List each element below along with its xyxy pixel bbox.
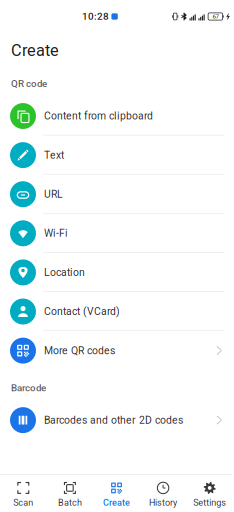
staticText: Location xyxy=(44,266,85,278)
button[interactable]: URL xyxy=(0,175,233,214)
staticText: Scan xyxy=(13,497,33,508)
button[interactable]: Scan xyxy=(0,473,47,512)
button[interactable]: More QR codes xyxy=(0,331,233,370)
staticText: Batch xyxy=(58,497,82,508)
button[interactable]: Create xyxy=(93,473,140,512)
button[interactable]: Barcodes and other 2D codes xyxy=(0,401,233,440)
staticText: Text xyxy=(44,149,64,161)
button[interactable]: History xyxy=(140,473,186,512)
staticText: Content from clipboard xyxy=(44,110,153,122)
staticText: Contact (VCard) xyxy=(44,305,120,318)
staticText: QR code xyxy=(11,78,47,89)
button[interactable]: Batch xyxy=(47,473,93,512)
button[interactable]: Wi-Fi xyxy=(0,214,233,253)
button[interactable]: Content from clipboard xyxy=(0,96,233,136)
staticText: More QR codes xyxy=(44,344,115,357)
staticText: 10:28 xyxy=(82,11,109,22)
staticText: Barcodes and other 2D codes xyxy=(44,414,183,426)
staticText: Barcode xyxy=(11,382,46,394)
staticText: Wi-Fi xyxy=(44,227,68,239)
staticText: URL xyxy=(44,188,63,200)
staticText: 67 xyxy=(212,13,218,20)
staticText: Create xyxy=(11,41,59,60)
staticText: History xyxy=(149,497,177,508)
button[interactable]: Contact (VCard) xyxy=(0,292,233,331)
button[interactable]: Settings xyxy=(186,473,233,512)
button[interactable]: Location xyxy=(0,253,233,292)
button[interactable]: Text xyxy=(0,136,233,175)
staticText: Create xyxy=(103,497,130,508)
staticText: Settings xyxy=(193,497,226,508)
